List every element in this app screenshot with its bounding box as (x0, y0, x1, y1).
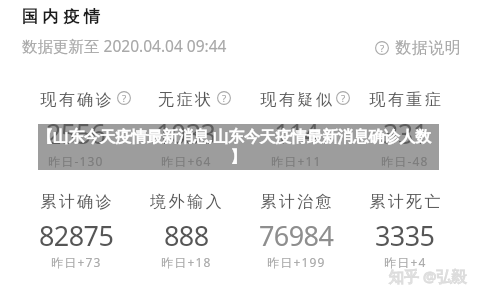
staticText: 昨日+4 (384, 254, 427, 270)
staticText: 】 (230, 147, 246, 167)
button[interactable] (241, 82, 351, 173)
button[interactable]: 说明 (217, 91, 231, 105)
staticText: 昨日+18 (161, 254, 212, 270)
staticText: 现有重症 (368, 90, 442, 110)
staticText: 331 (383, 115, 428, 152)
staticText: 888 (164, 217, 209, 254)
staticText: 昨日+11 (271, 153, 322, 169)
staticText: 境外输入 (149, 192, 223, 212)
button[interactable]: 说明 (117, 91, 131, 105)
staticText: 累计治愈 (259, 192, 333, 212)
staticText: 昨日+64 (161, 153, 212, 169)
staticText: 数据说明 (395, 38, 461, 58)
staticText: 2556 (46, 115, 106, 152)
staticText: 累计死亡 (368, 192, 442, 212)
button[interactable] (351, 82, 461, 173)
button[interactable] (21, 184, 131, 274)
staticText: 昨日-130 (48, 153, 104, 169)
staticText: 国内疫情 (22, 7, 105, 27)
staticText: 114 (274, 115, 319, 152)
button[interactable] (21, 82, 131, 173)
staticText: 昨日-48 (381, 153, 429, 169)
button[interactable]: 说明 (336, 91, 350, 105)
staticText: ? (341, 92, 346, 105)
staticText: 82875 (39, 217, 114, 254)
staticText: 76984 (259, 217, 334, 254)
staticText: ? (122, 92, 127, 105)
button[interactable]: 国内疫情 (22, 7, 105, 27)
staticText: 无症状 (158, 90, 214, 110)
staticText: 数据更新至 2020.04.04 09:44 (22, 35, 227, 56)
staticText: 1033 (156, 115, 216, 152)
staticText: ? (380, 42, 385, 55)
staticText: 昨日+199 (267, 254, 326, 270)
button[interactable] (131, 82, 241, 173)
button[interactable] (131, 184, 241, 274)
staticText: 3335 (375, 217, 435, 254)
staticText: 现有疑似 (259, 90, 333, 110)
staticText: 现有确诊 (39, 90, 113, 110)
button[interactable] (241, 184, 351, 274)
staticText: 昨日+73 (51, 254, 102, 270)
button[interactable]: ? (375, 38, 461, 58)
staticText: 知乎 @弘毅 (389, 266, 467, 286)
staticText: 【山东今天疫情最新消息,山东今天疫情最新消息确诊人数 (37, 125, 431, 147)
button[interactable] (351, 184, 461, 274)
staticText: 累计确诊 (39, 192, 113, 212)
staticText: ? (222, 92, 227, 105)
